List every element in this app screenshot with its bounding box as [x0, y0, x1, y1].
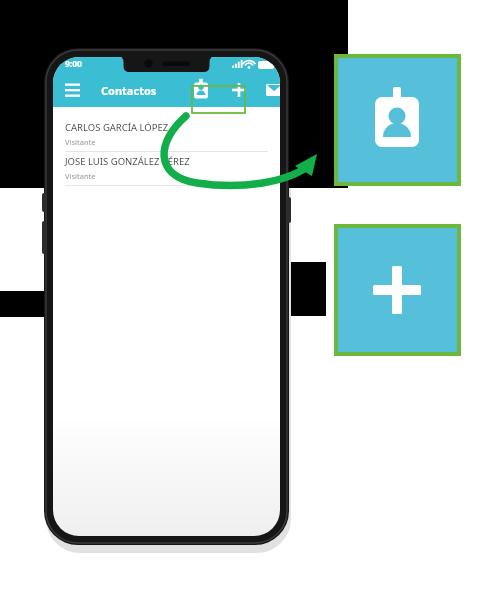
button[interactable]: Contact card and add contact actions — [192, 86, 245, 113]
button[interactable]: Add — [334, 224, 461, 356]
button[interactable]: Contact card — [334, 54, 461, 186]
